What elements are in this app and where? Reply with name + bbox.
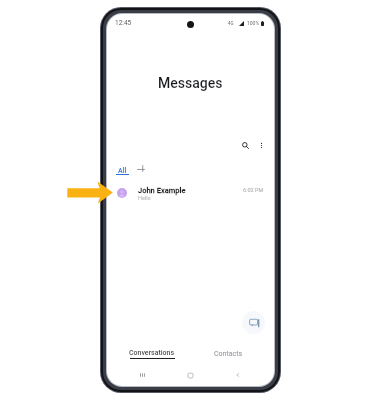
button[interactable]: Search — [237, 137, 253, 153]
button[interactable]: Add — [136, 164, 146, 174]
staticText: 4G — [228, 21, 234, 26]
staticText: 100% — [247, 20, 260, 26]
button[interactable]: Home — [166, 368, 214, 382]
staticText: 12:45 — [115, 19, 132, 27]
button[interactable]: New conversation — [242, 311, 265, 334]
staticText: 6:02 PM — [243, 187, 264, 193]
button[interactable]: All — [112, 167, 133, 176]
button[interactable]: Conversations — [114, 345, 190, 363]
staticText: Messages — [158, 75, 223, 91]
staticText: All — [118, 167, 127, 175]
button[interactable]: Back — [214, 368, 262, 382]
staticText: Contacts — [214, 350, 243, 358]
button[interactable]: More options — [253, 137, 269, 153]
button[interactable]: Contacts — [190, 345, 267, 363]
button[interactable]: John Example — [107, 183, 274, 203]
staticText: John Example — [138, 186, 186, 195]
staticText: Hello — [138, 195, 151, 201]
button[interactable]: Recent apps — [119, 368, 166, 382]
staticText: Conversations — [129, 349, 175, 357]
